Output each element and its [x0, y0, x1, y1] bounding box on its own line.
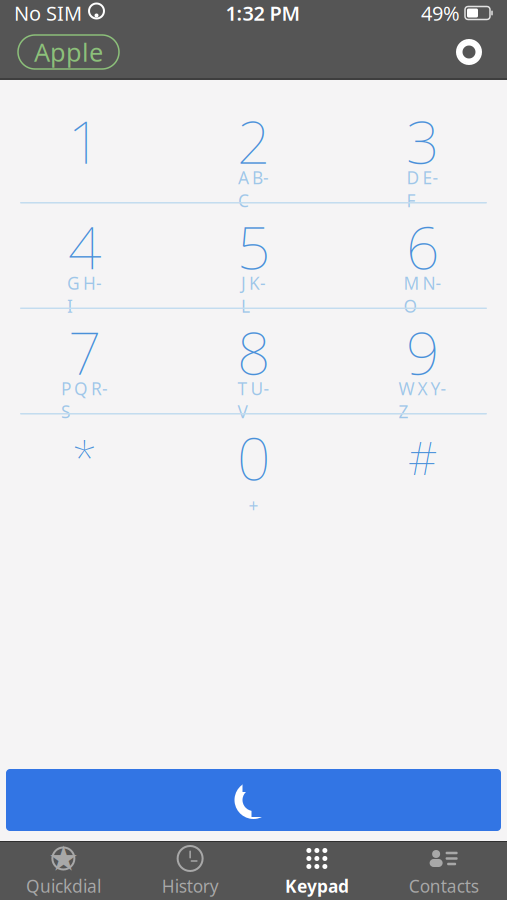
staticText: 7 [68, 313, 101, 391]
staticText: PQRS [61, 377, 108, 423]
staticText: 1:32 PM [225, 0, 300, 26]
button[interactable]: ★ [0, 843, 127, 899]
button[interactable]: 5 [169, 203, 338, 307]
staticText: + [248, 494, 258, 517]
staticText: Apple [34, 35, 103, 69]
button[interactable]: # [338, 414, 507, 518]
staticText: 49% [421, 0, 460, 26]
staticText: * [72, 427, 97, 488]
staticText: History [162, 874, 219, 897]
staticText: MNO [403, 271, 441, 317]
button[interactable]: Settings [449, 32, 489, 72]
staticText: GHI [67, 271, 102, 317]
staticText: 6 [406, 207, 439, 285]
staticText: No SIM [14, 0, 82, 26]
button[interactable]: 7 [0, 309, 169, 413]
staticText: # [408, 427, 437, 488]
staticText: 5 [237, 207, 270, 285]
button[interactable]: * [0, 414, 169, 518]
button[interactable]: 6 [338, 203, 507, 307]
staticText: ABC [238, 166, 269, 212]
staticText: ★ [48, 839, 79, 878]
button[interactable]: Call [0, 769, 507, 831]
staticText: 2 [237, 102, 270, 180]
staticText: 8 [237, 313, 270, 391]
button[interactable]: 0 [169, 414, 338, 518]
staticText: 1 [68, 102, 101, 180]
staticText: WXYZ [398, 377, 446, 423]
staticText: 3 [406, 102, 439, 180]
staticText: DEF [406, 166, 438, 212]
button[interactable]: History [127, 843, 254, 899]
button[interactable]: Keypad [253, 843, 380, 899]
staticText: 9 [406, 313, 439, 391]
button[interactable]: 1 [0, 98, 169, 202]
staticText: TUV [237, 377, 269, 423]
button[interactable]: 9 [338, 309, 507, 413]
staticText: Quickdial [26, 874, 101, 897]
button[interactable]: 3 [338, 98, 507, 202]
button[interactable]: 2 [169, 98, 338, 202]
staticText: JKL [241, 271, 266, 317]
button[interactable]: Apple [18, 35, 119, 69]
button[interactable]: 8 [169, 309, 338, 413]
button[interactable]: Contacts [380, 843, 507, 899]
staticText: 0 [237, 418, 270, 496]
staticText: Keypad [285, 874, 349, 897]
button[interactable]: 4 [0, 203, 169, 307]
staticText: 4 [68, 207, 101, 285]
staticText: Contacts [409, 874, 479, 897]
